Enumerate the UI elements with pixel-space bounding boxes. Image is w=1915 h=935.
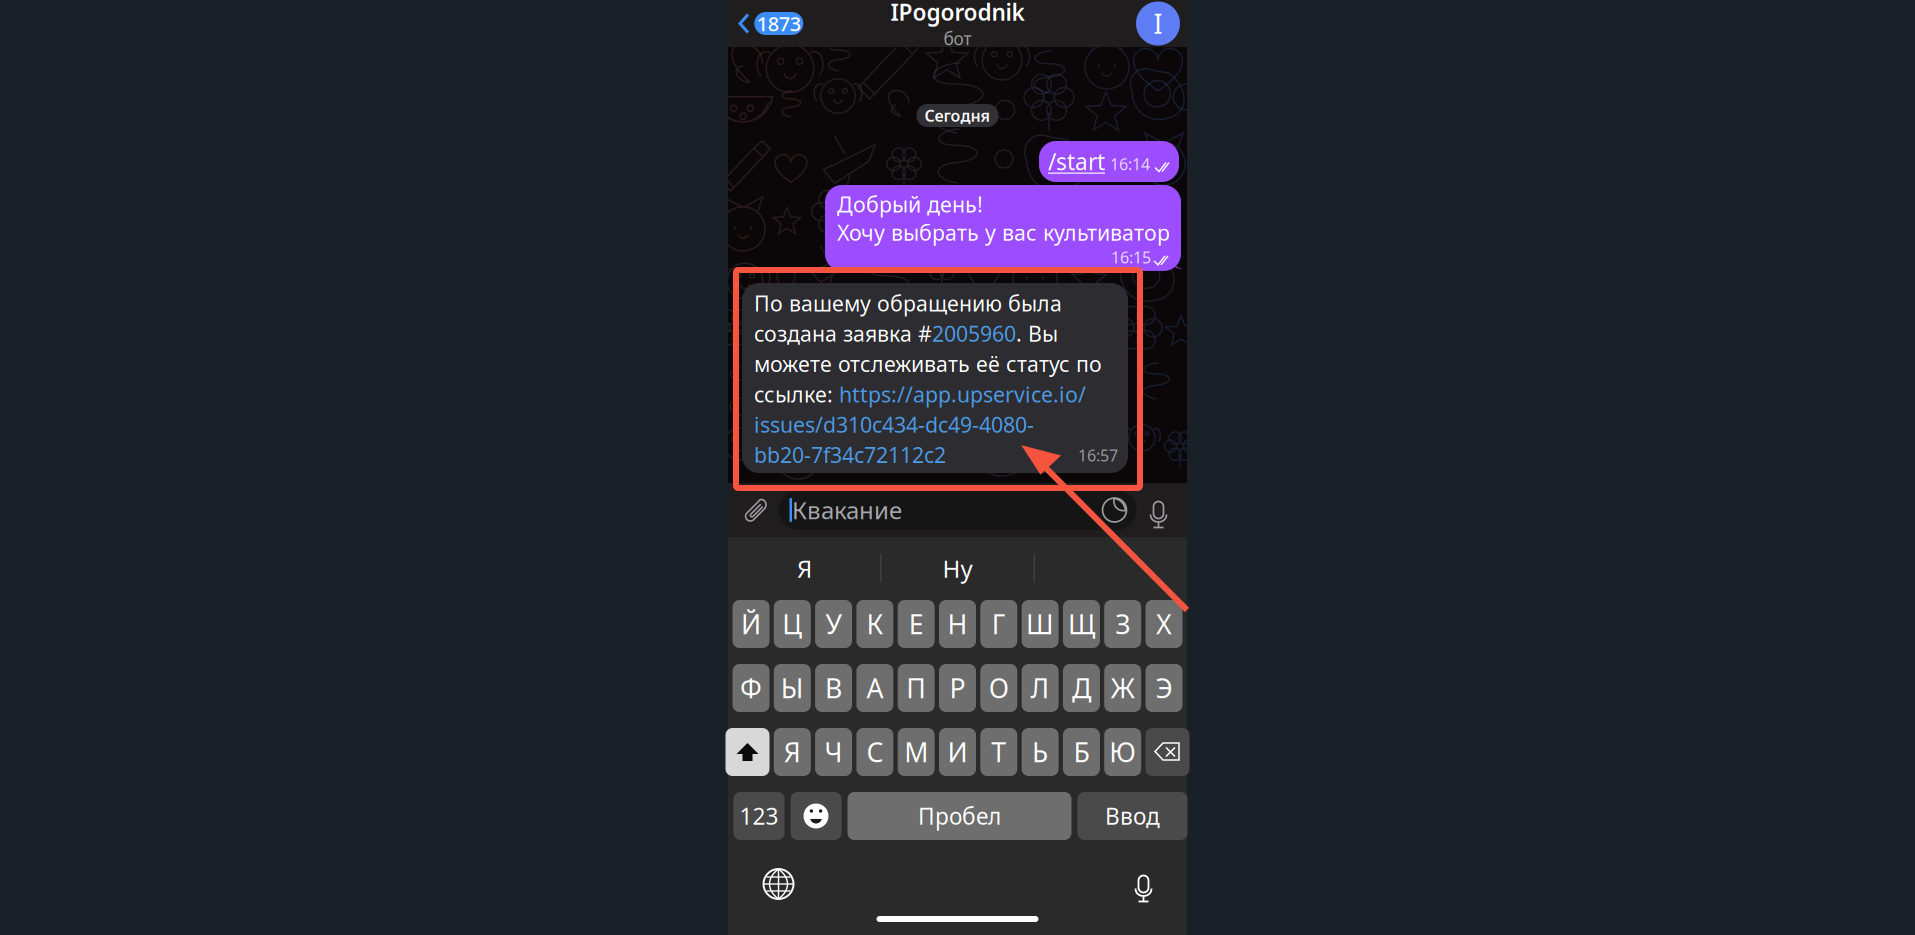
staticText: Добрый день! [837, 190, 983, 218]
button[interactable]: Я [728, 540, 881, 596]
staticText: Ц [782, 606, 802, 642]
button[interactable]: П [898, 664, 935, 712]
staticText: бот [943, 27, 971, 50]
button[interactable]: Emoji [790, 792, 841, 840]
staticText: Ж [1111, 670, 1135, 706]
button[interactable]: Е [898, 600, 935, 648]
button[interactable]: Й [732, 600, 769, 648]
staticText: У [826, 606, 842, 642]
staticText: Г [992, 606, 1006, 642]
button[interactable]: Б [1063, 728, 1100, 776]
staticText: З [1115, 606, 1130, 642]
staticText: bb20-7f34c72112c2 [754, 441, 946, 469]
button[interactable]: Т [980, 728, 1017, 776]
staticText: Т [991, 734, 1006, 770]
button[interactable]: Voice message [1136, 488, 1180, 532]
staticText: Ч [825, 734, 843, 770]
staticText: Пробел [918, 801, 1001, 831]
button[interactable]: В [815, 664, 852, 712]
staticText: П [906, 670, 926, 706]
button[interactable]: Г [980, 600, 1017, 648]
staticText: Ю [1109, 734, 1136, 770]
button[interactable]: Stickers [1101, 497, 1127, 523]
staticText: В [825, 670, 842, 706]
button[interactable]: М [898, 728, 935, 776]
staticText: Сегодня [924, 105, 990, 126]
button[interactable]: А [856, 664, 893, 712]
staticText: Ь [1032, 734, 1048, 770]
button[interactable]: Ш [1022, 600, 1059, 648]
button[interactable]: Л [1022, 664, 1059, 712]
staticText: М [904, 734, 928, 770]
button[interactable]: Ю [1104, 728, 1141, 776]
staticText: К [866, 606, 883, 642]
staticText: По вашему обращению была [754, 289, 1062, 317]
button[interactable]: Ж [1104, 664, 1141, 712]
button[interactable]: Dictation [1121, 862, 1165, 906]
staticText: Х [1156, 606, 1172, 642]
staticText: ссылке: [754, 380, 839, 408]
staticText: Ввод [1105, 801, 1160, 831]
button[interactable]: С [856, 728, 893, 776]
button[interactable]: Ц [774, 600, 811, 648]
staticText: /start [1048, 146, 1105, 176]
button[interactable]: Ввод [1077, 792, 1187, 840]
staticText: Й [741, 606, 761, 642]
staticText: можете отслеживать её статус по [754, 350, 1102, 378]
staticText: А [866, 670, 883, 706]
staticText: I [1153, 6, 1162, 41]
staticText: https://app.upservice.io/ [839, 380, 1086, 408]
button[interactable]: Щ [1063, 600, 1100, 648]
staticText: 1873 [757, 10, 801, 37]
button[interactable]: У [815, 600, 852, 648]
button[interactable]: Н [939, 600, 976, 648]
button[interactable]: Delete [1145, 728, 1189, 776]
staticText: 16:57 [1078, 445, 1118, 466]
button[interactable]: Д [1063, 664, 1100, 712]
button[interactable]: Э [1145, 664, 1182, 712]
button[interactable]: О [980, 664, 1017, 712]
button[interactable]: Ч [815, 728, 852, 776]
button[interactable]: Profile [1136, 1, 1187, 45]
staticText: И [947, 734, 967, 770]
button[interactable]: З [1104, 600, 1141, 648]
staticText: Н [947, 606, 967, 642]
staticText: Ну [942, 553, 972, 584]
staticText: Л [1031, 670, 1050, 706]
button[interactable]: Ы [774, 664, 811, 712]
button[interactable]: Ф [732, 664, 769, 712]
button[interactable]: Ь [1022, 728, 1059, 776]
button[interactable]: Пробел [847, 792, 1071, 840]
staticText: . Вы [1016, 319, 1058, 348]
staticText: IPogorodnik [890, 0, 1024, 27]
button[interactable]: Х [1145, 600, 1182, 648]
staticText: 2005960 [932, 319, 1016, 348]
staticText: Р [949, 670, 965, 706]
button[interactable]: И [939, 728, 976, 776]
button[interactable]: Shift [725, 728, 769, 776]
button[interactable]: Attach [734, 488, 778, 532]
staticText: issues/d310c434-dc49-4080- [754, 410, 1034, 439]
button[interactable]: Я [774, 728, 811, 776]
button[interactable]: Ну [881, 540, 1034, 596]
staticText: Я [784, 734, 801, 770]
staticText: 123 [739, 801, 778, 831]
staticText: С [866, 734, 883, 770]
staticText: Ш [1026, 606, 1054, 642]
staticText: Б [1073, 734, 1089, 770]
button[interactable]: 1873 [728, 0, 803, 47]
staticText: создана заявка # [754, 319, 932, 348]
staticText: Квакание [792, 494, 902, 526]
staticText: 16:15 [1111, 247, 1151, 268]
staticText: Хочу выбрать у вас культиватор [837, 218, 1170, 247]
staticText: О [989, 670, 1009, 706]
staticText: Е [909, 606, 924, 642]
button[interactable]: Switch keyboard [756, 862, 800, 906]
staticText: Ы [781, 670, 804, 706]
staticText: Э [1155, 670, 1172, 706]
button[interactable]: К [856, 600, 893, 648]
button[interactable]: Р [939, 664, 976, 712]
button[interactable]: 123 [733, 792, 784, 840]
staticText: Д [1072, 670, 1091, 706]
staticText: 16:14 [1110, 153, 1150, 174]
